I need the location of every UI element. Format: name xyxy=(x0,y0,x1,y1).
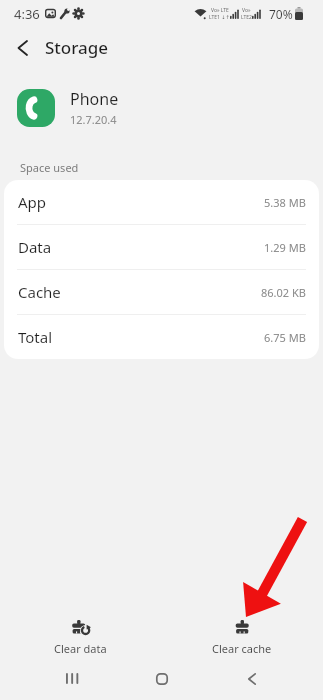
staticText: Vo» LTE xyxy=(211,7,229,14)
staticText: 86.02 KB xyxy=(261,285,306,300)
staticText: 1.29 MB xyxy=(264,240,306,255)
button[interactable]: Total xyxy=(4,315,319,359)
button[interactable] xyxy=(52,664,92,693)
staticText: 70% xyxy=(269,6,293,22)
button[interactable]: App xyxy=(4,180,319,224)
staticText: App xyxy=(18,192,47,212)
staticText: Phone xyxy=(70,88,119,110)
staticText: Clear data xyxy=(54,641,107,656)
staticText: Cache xyxy=(18,282,61,302)
button[interactable]: Clear cache xyxy=(161,610,323,664)
staticText: LTE2 xyxy=(241,14,252,21)
button[interactable] xyxy=(142,664,182,693)
button[interactable]: Data xyxy=(4,225,319,269)
button[interactable]: Clear data xyxy=(0,610,161,664)
staticText: Storage xyxy=(45,36,109,59)
staticText: 4:36 xyxy=(14,5,40,23)
staticText: Clear cache xyxy=(212,641,272,656)
staticText: 12.7.20.4 xyxy=(70,112,117,127)
staticText: 6.75 MB xyxy=(264,330,306,345)
staticText: Data xyxy=(18,237,52,257)
staticText: LTE1 ↓↑ xyxy=(209,14,230,21)
button[interactable] xyxy=(0,27,45,68)
staticText: Vo» xyxy=(242,7,251,14)
staticText: Space used xyxy=(20,160,79,175)
staticText: Total xyxy=(18,327,53,347)
button[interactable] xyxy=(232,664,272,693)
button[interactable]: Cache xyxy=(4,270,319,314)
staticText: 5.38 MB xyxy=(264,195,306,210)
